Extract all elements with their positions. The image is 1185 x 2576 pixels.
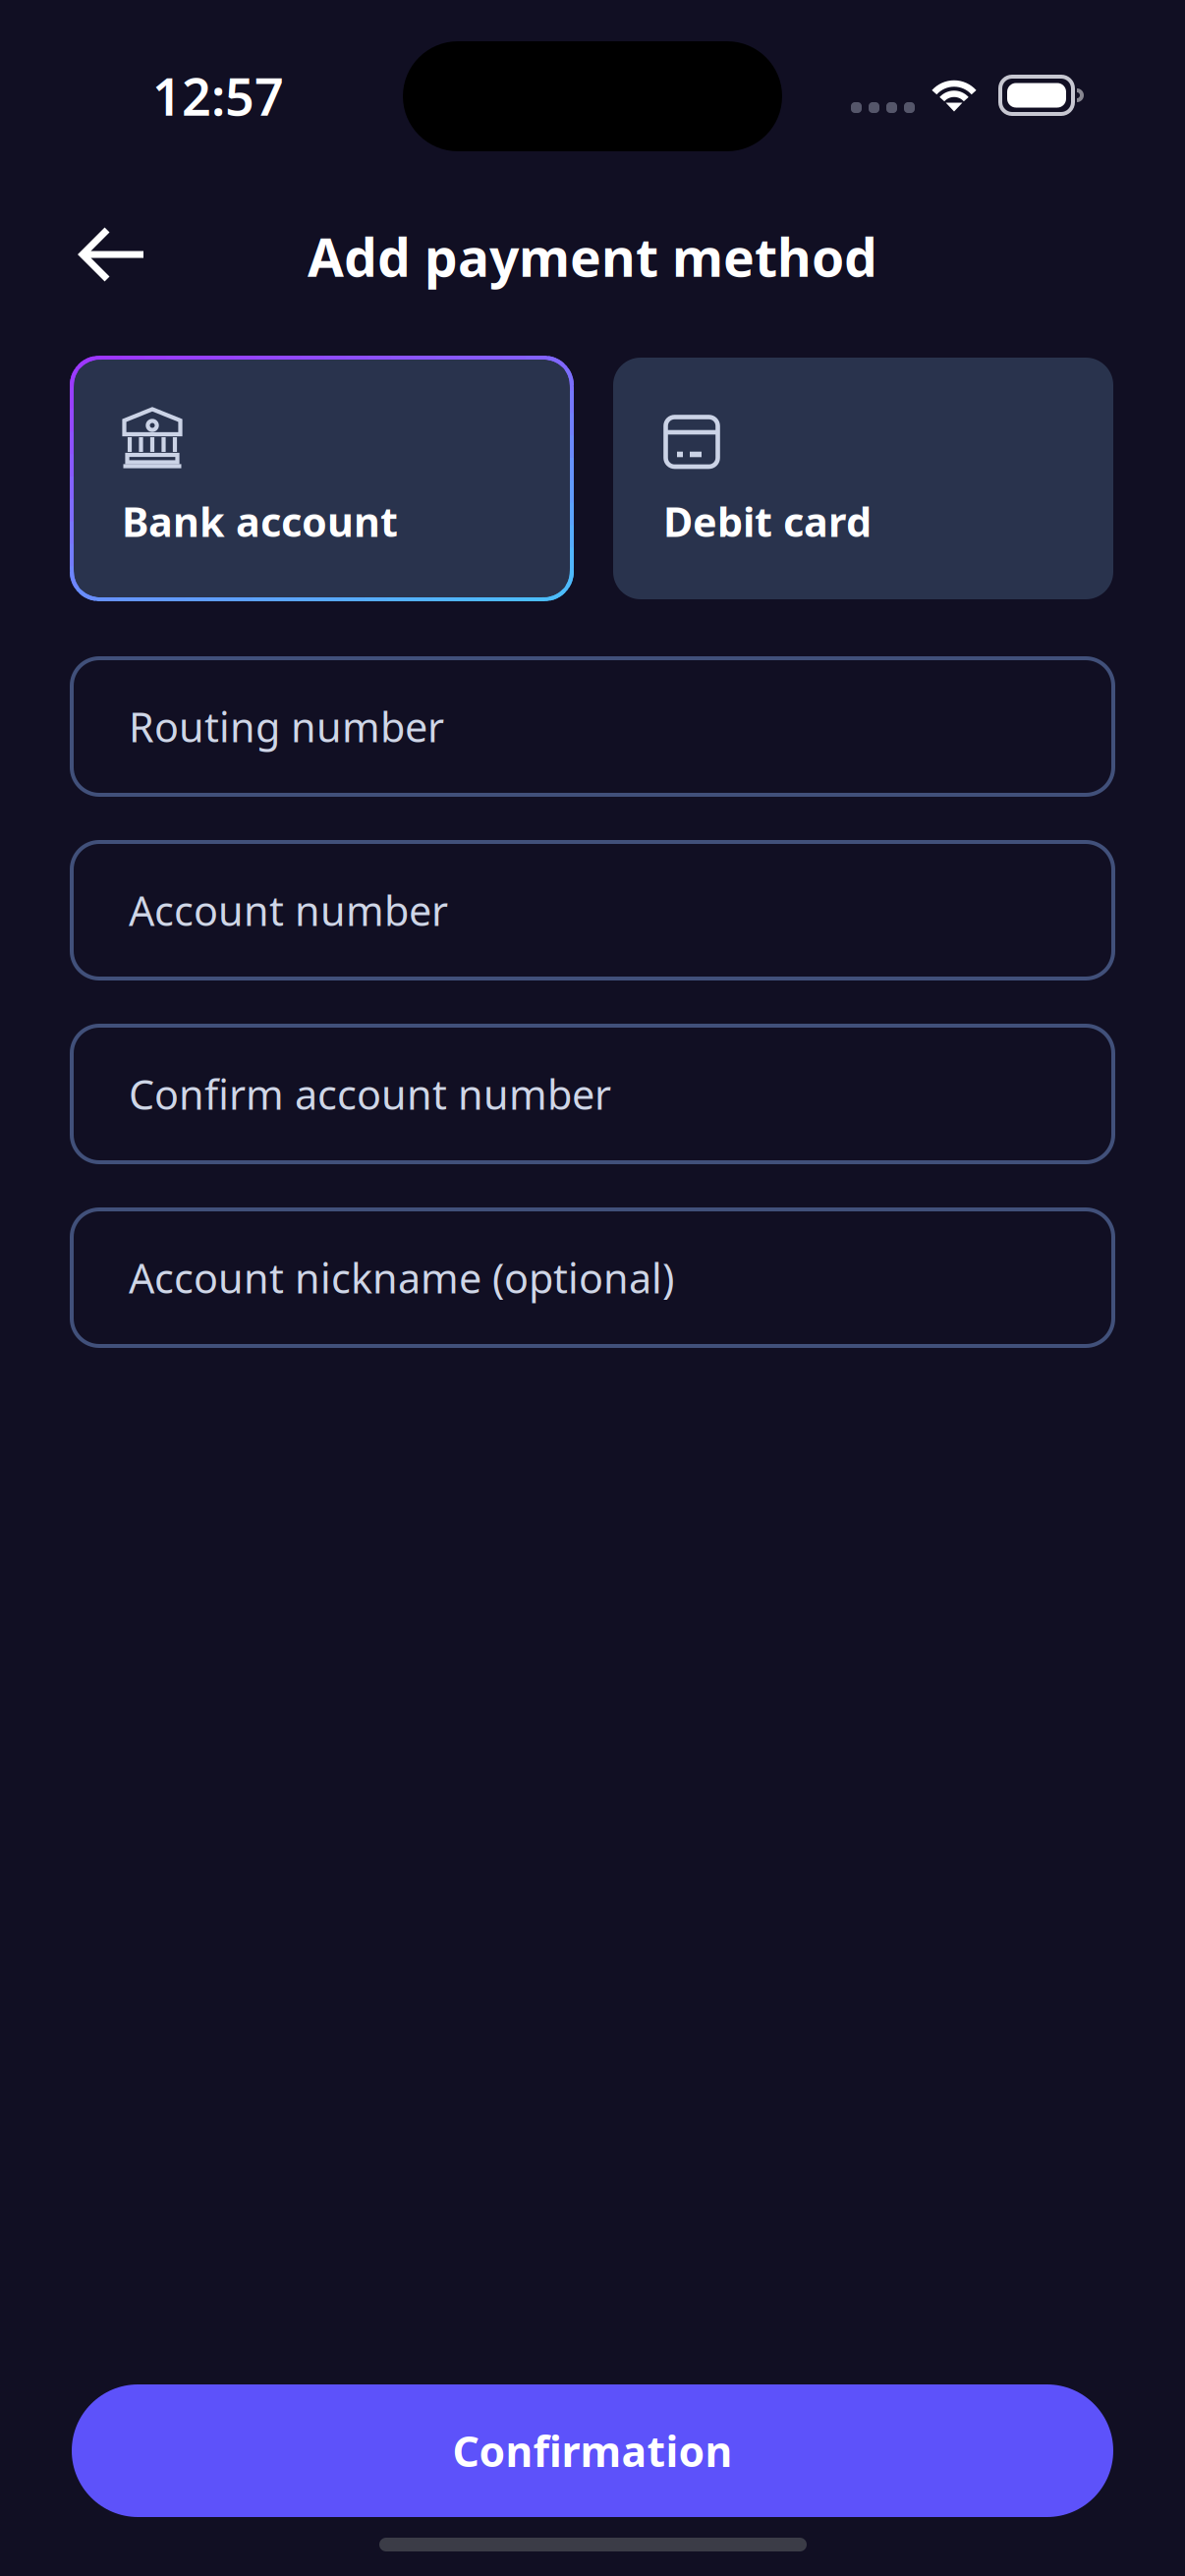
- staticText: Account number: [129, 883, 448, 937]
- staticText: Add payment method: [308, 222, 877, 291]
- button[interactable]: Routing number: [72, 658, 1113, 795]
- button[interactable]: Debit card: [613, 358, 1113, 599]
- button[interactable]: Account nickname (optional): [72, 1209, 1113, 1346]
- staticText: Bank account: [122, 494, 398, 548]
- staticText: Debit card: [663, 494, 872, 548]
- staticText: Account nickname (optional): [129, 1251, 674, 1305]
- staticText: Confirm account number: [129, 1067, 611, 1121]
- button[interactable]: Confirm account number: [72, 1026, 1113, 1162]
- button[interactable]: Bank account: [72, 358, 572, 599]
- button[interactable]: Back: [56, 203, 170, 306]
- button[interactable]: Account number: [72, 842, 1113, 979]
- staticText: 12:57: [152, 62, 284, 130]
- staticText: Confirmation: [452, 2423, 733, 2479]
- staticText: Routing number: [129, 700, 444, 754]
- button[interactable]: Confirmation: [72, 2384, 1113, 2517]
